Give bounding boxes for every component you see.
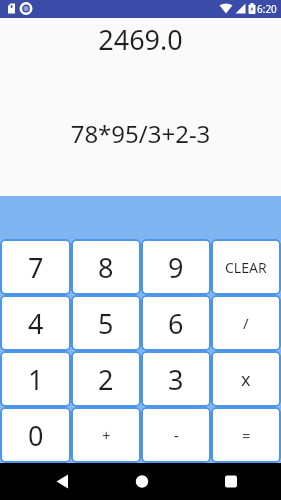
staticText: - — [174, 425, 179, 445]
staticText: + — [102, 425, 111, 445]
staticText: CLEAR — [225, 258, 267, 277]
staticText: 0 — [28, 417, 44, 454]
staticText: 4 — [28, 305, 44, 342]
button[interactable]: 6 — [141, 295, 211, 351]
button[interactable]: CLEAR — [211, 239, 281, 295]
button[interactable]: 3 — [141, 351, 211, 407]
button[interactable]: - — [141, 407, 211, 463]
button[interactable]: 4 — [0, 295, 71, 351]
staticText: 7 — [28, 249, 44, 286]
button[interactable]: = — [211, 407, 281, 463]
staticText: 5 — [98, 305, 114, 342]
staticText: 2469.0 — [0, 21, 281, 58]
button[interactable]: 1 — [0, 351, 71, 407]
staticText: 78*95/3+2-3 — [0, 117, 281, 150]
staticText: 6:20 — [257, 2, 277, 16]
staticText: 6 — [168, 305, 184, 342]
button[interactable]: 0 — [0, 407, 71, 463]
staticText: = — [242, 425, 251, 445]
staticText: x — [241, 367, 251, 392]
button[interactable]: 8 — [71, 239, 141, 295]
staticText: 9 — [168, 249, 184, 286]
button[interactable]: 9 — [141, 239, 211, 295]
staticText: 2 — [98, 361, 114, 398]
button[interactable]: / — [211, 295, 281, 351]
button[interactable]: 5 — [71, 295, 141, 351]
button[interactable]: 2 — [71, 351, 141, 407]
staticText: 3 — [168, 361, 184, 398]
staticText: 1 — [28, 361, 44, 398]
staticText: 8 — [98, 249, 114, 286]
button[interactable]: 7 — [0, 239, 71, 295]
button[interactable]: x — [211, 351, 281, 407]
button[interactable]: + — [71, 407, 141, 463]
staticText: / — [243, 313, 249, 333]
